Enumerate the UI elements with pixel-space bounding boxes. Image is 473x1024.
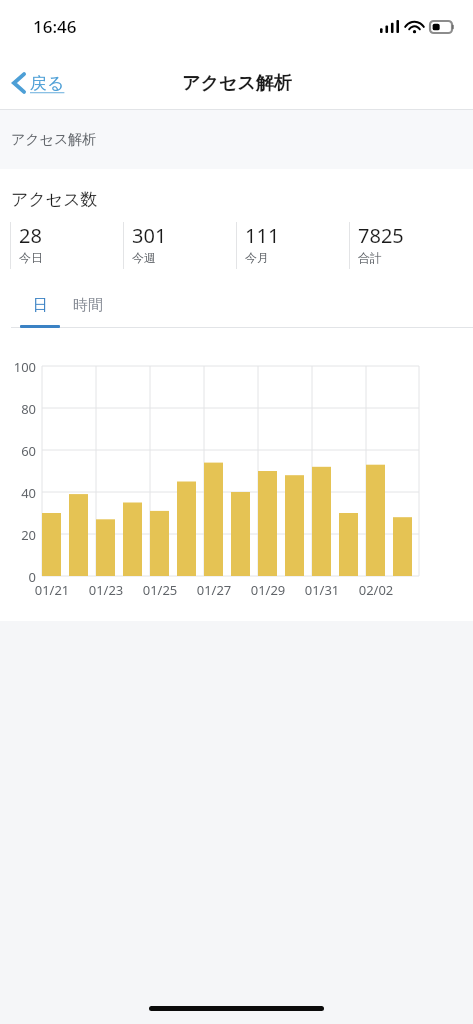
staticText: 40	[4, 484, 36, 502]
button[interactable]: 日	[20, 296, 60, 328]
other: Home indicator	[149, 1006, 324, 1011]
staticText: 01/29	[241, 581, 295, 599]
staticText: 01/23	[79, 581, 133, 599]
staticText: 28	[19, 222, 42, 249]
staticText: アクセス解析	[11, 131, 97, 149]
staticText: アクセス数	[11, 189, 98, 210]
staticText: 01/31	[295, 581, 349, 599]
staticText: 80	[4, 400, 36, 418]
staticText: 今週	[132, 250, 156, 265]
staticText: 0	[4, 568, 36, 586]
staticText: 01/25	[133, 581, 187, 599]
staticText: 戻る	[30, 73, 65, 94]
staticText: 今日	[19, 250, 43, 265]
staticText: 111	[245, 222, 280, 249]
staticText: 02/02	[349, 581, 403, 599]
staticText: 7825	[358, 222, 404, 249]
staticText: 時間	[73, 296, 103, 315]
staticText: アクセス解析	[182, 72, 292, 95]
button[interactable]: 戻る	[0, 56, 77, 110]
staticText: 合計	[358, 250, 382, 265]
staticText: 01/27	[187, 581, 241, 599]
button[interactable]: 時間	[60, 296, 116, 328]
staticText: 301	[132, 222, 167, 249]
staticText: 今月	[245, 250, 269, 265]
staticText: 日	[33, 296, 48, 315]
staticText: 100	[4, 358, 36, 376]
staticText: 01/21	[25, 581, 79, 599]
staticText: 16:46	[33, 15, 77, 38]
staticText: 60	[4, 442, 36, 460]
staticText: 20	[4, 526, 36, 544]
